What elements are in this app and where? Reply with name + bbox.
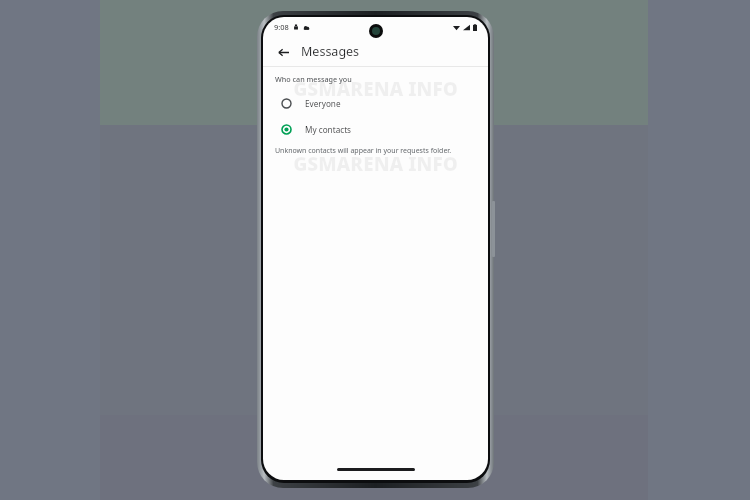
button[interactable]: My contacts: [263, 116, 488, 142]
staticText: GSMARENA INFO: [263, 76, 488, 102]
button[interactable]: Back: [273, 42, 293, 62]
button[interactable]: Everyone: [263, 90, 488, 116]
staticText: Messages: [301, 43, 360, 60]
staticText: Everyone: [305, 98, 341, 109]
staticText: My contacts: [305, 124, 352, 135]
staticText: GSMARENA INFO: [263, 151, 488, 177]
staticText: 9:08: [274, 22, 289, 32]
staticText: Unknown contacts will appear in your req…: [275, 146, 452, 156]
staticText: Who can message you: [275, 74, 352, 84]
